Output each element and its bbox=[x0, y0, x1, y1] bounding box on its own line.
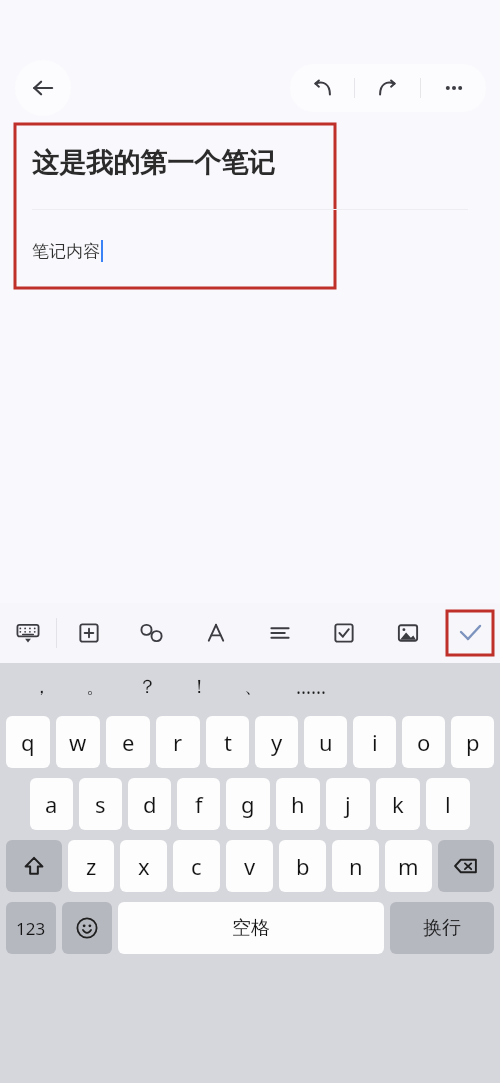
button[interactable]: o bbox=[402, 716, 445, 768]
staticText: k bbox=[392, 789, 404, 819]
staticText: h bbox=[291, 789, 305, 819]
staticText: d bbox=[143, 789, 157, 819]
button[interactable]: m bbox=[385, 840, 432, 892]
staticText: e bbox=[122, 727, 135, 757]
button[interactable]: q bbox=[6, 716, 50, 768]
button[interactable]: Attach bbox=[120, 603, 184, 663]
staticText: m bbox=[398, 851, 419, 881]
button[interactable]: Backspace bbox=[438, 840, 494, 892]
button[interactable]: a bbox=[30, 778, 73, 830]
staticText: u bbox=[319, 727, 333, 757]
button[interactable]: w bbox=[56, 716, 100, 768]
button[interactable]: Back bbox=[15, 60, 71, 116]
button[interactable]: Undo bbox=[290, 64, 354, 112]
button[interactable]: 、 bbox=[230, 663, 276, 711]
staticText: l bbox=[445, 789, 451, 819]
staticText: 123 bbox=[16, 917, 46, 940]
staticText: r bbox=[173, 727, 183, 757]
button[interactable]: h bbox=[276, 778, 320, 830]
staticText: y bbox=[271, 727, 283, 757]
staticText: x bbox=[138, 851, 150, 881]
button[interactable]: Text format bbox=[184, 603, 248, 663]
button[interactable]: p bbox=[451, 716, 494, 768]
staticText: 空格 bbox=[232, 916, 270, 940]
staticText: 笔记内容 bbox=[32, 241, 100, 262]
button[interactable]: s bbox=[79, 778, 122, 830]
staticText: w bbox=[69, 727, 87, 757]
button[interactable]: z bbox=[68, 840, 114, 892]
staticText: b bbox=[296, 851, 310, 881]
staticText: 。 bbox=[86, 675, 105, 699]
button[interactable]: 123 bbox=[6, 902, 56, 954]
button[interactable]: d bbox=[128, 778, 171, 830]
button[interactable]: x bbox=[120, 840, 167, 892]
button[interactable]: Insert bbox=[57, 603, 120, 663]
staticText: o bbox=[417, 727, 431, 757]
staticText: g bbox=[241, 789, 255, 819]
button[interactable]: Emoji bbox=[62, 902, 112, 954]
button[interactable]: 空格 bbox=[118, 902, 384, 954]
button[interactable]: 换行 bbox=[390, 902, 494, 954]
button[interactable]: ！ bbox=[176, 663, 222, 711]
button[interactable]: Redo bbox=[355, 64, 420, 112]
button[interactable]: j bbox=[326, 778, 370, 830]
staticText: s bbox=[95, 789, 106, 819]
staticText: z bbox=[86, 851, 97, 881]
button[interactable]: Checklist bbox=[312, 603, 376, 663]
button[interactable]: ， bbox=[18, 663, 64, 711]
button[interactable]: Keyboard bbox=[0, 603, 56, 663]
staticText: 这是我的第一个笔记 bbox=[32, 146, 275, 180]
button[interactable]: 笔记内容 bbox=[32, 238, 103, 264]
button[interactable]: r bbox=[156, 716, 200, 768]
button[interactable]: n bbox=[332, 840, 379, 892]
staticText: c bbox=[191, 851, 202, 881]
button[interactable]: u bbox=[304, 716, 347, 768]
button[interactable]: y bbox=[255, 716, 298, 768]
staticText: 、 bbox=[244, 675, 263, 699]
staticText: ！ bbox=[190, 675, 209, 699]
button[interactable]: g bbox=[226, 778, 270, 830]
staticText: n bbox=[349, 851, 363, 881]
button[interactable]: 。 bbox=[72, 663, 118, 711]
staticText: t bbox=[224, 727, 232, 757]
staticText: i bbox=[372, 727, 378, 757]
button[interactable]: Image bbox=[376, 603, 440, 663]
button[interactable]: ？ bbox=[124, 663, 170, 711]
button[interactable]: More options bbox=[421, 64, 486, 112]
button[interactable]: Align bbox=[248, 603, 312, 663]
button[interactable]: Shift bbox=[6, 840, 62, 892]
button[interactable]: b bbox=[279, 840, 326, 892]
button[interactable]: k bbox=[376, 778, 420, 830]
button[interactable]: c bbox=[173, 840, 220, 892]
staticText: ？ bbox=[138, 675, 157, 699]
staticText: …… bbox=[296, 674, 327, 700]
staticText: j bbox=[345, 789, 351, 819]
button[interactable]: t bbox=[206, 716, 249, 768]
staticText: a bbox=[45, 789, 58, 819]
button[interactable]: e bbox=[106, 716, 150, 768]
staticText: ， bbox=[32, 675, 51, 699]
staticText: v bbox=[244, 851, 256, 881]
button[interactable]: f bbox=[177, 778, 220, 830]
staticText: 换行 bbox=[423, 916, 461, 940]
staticText: q bbox=[21, 727, 35, 757]
button[interactable]: i bbox=[353, 716, 396, 768]
button[interactable]: v bbox=[226, 840, 273, 892]
button[interactable]: 这是我的第一个笔记 bbox=[32, 146, 452, 190]
button[interactable]: …… bbox=[288, 663, 334, 711]
button[interactable]: l bbox=[426, 778, 470, 830]
staticText: f bbox=[195, 789, 203, 819]
staticText: p bbox=[466, 727, 480, 757]
button[interactable]: Done bbox=[446, 610, 494, 656]
